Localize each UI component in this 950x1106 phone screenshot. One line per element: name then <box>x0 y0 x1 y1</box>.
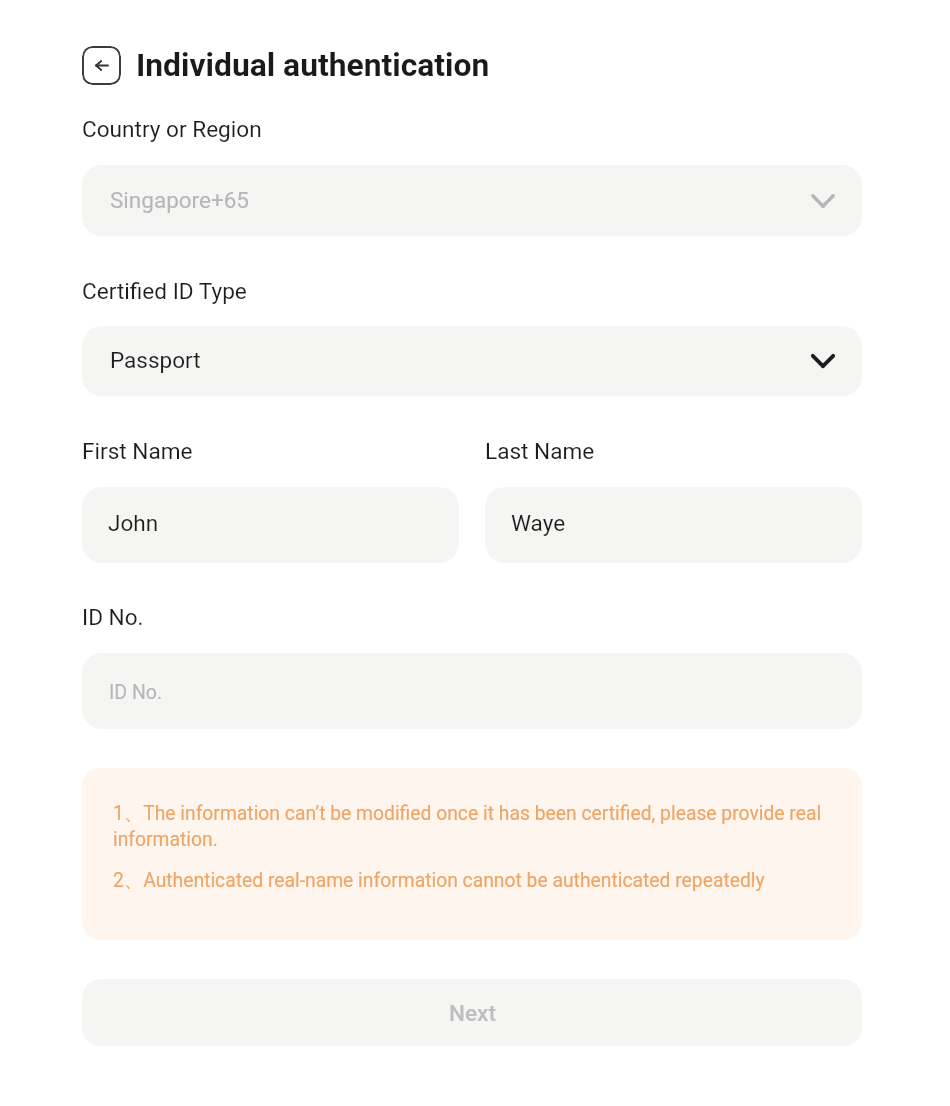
staticText: Passport <box>110 347 201 373</box>
button[interactable]: Back <box>82 46 121 85</box>
staticText: Last Name <box>485 438 595 464</box>
button[interactable]: Waye <box>485 487 862 563</box>
staticText: First Name <box>82 438 193 464</box>
staticText: John <box>108 510 159 536</box>
staticText: Certified ID Type <box>82 278 247 304</box>
button[interactable]: ID No. <box>82 653 862 729</box>
staticText: ID No. <box>82 604 144 630</box>
staticText: Country or Region <box>82 116 262 142</box>
staticText: Waye <box>511 510 566 536</box>
staticText: Singapore+65 <box>110 187 249 213</box>
button[interactable]: Singapore+65 <box>82 165 862 236</box>
staticText: Individual authentication <box>136 46 490 83</box>
staticText: ID No. <box>109 681 163 704</box>
button[interactable]: Next <box>82 979 862 1046</box>
button[interactable]: John <box>82 487 459 563</box>
staticText: Next <box>449 1000 496 1026</box>
staticText: 2、Authenticated real-name information ca… <box>113 868 765 892</box>
button[interactable]: Passport <box>82 326 862 396</box>
staticText: 1、The information can’t be modified once… <box>113 801 831 851</box>
